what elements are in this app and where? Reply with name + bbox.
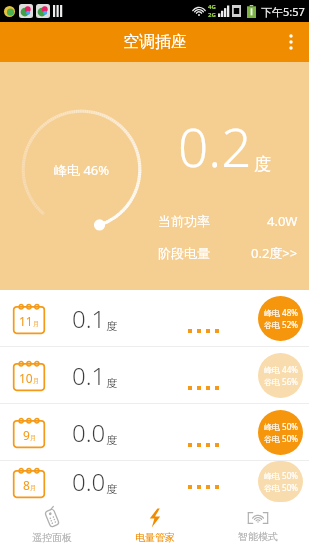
staticText: 0.0 <box>72 416 106 449</box>
button[interactable]: Peak electricity gauge 46 percent <box>20 108 143 231</box>
staticText: 11 <box>19 313 33 329</box>
staticText: 峰电 48% <box>264 307 298 318</box>
staticText: 0.0 <box>72 465 106 498</box>
staticText: 0.1 <box>72 359 106 392</box>
staticText: 月 <box>33 377 39 385</box>
staticText: 峰电 44% <box>264 364 298 375</box>
staticText: 遥控面板 <box>32 531 72 544</box>
staticText: 4G <box>208 3 216 11</box>
staticText: 下午5:57 <box>261 4 305 19</box>
staticText: 谷电 52% <box>264 319 298 330</box>
staticText: 9 <box>23 427 30 443</box>
staticText: 谷电 56% <box>264 376 298 387</box>
staticText: 度 <box>106 376 117 390</box>
staticText: 阶段电量 <box>158 245 210 261</box>
button[interactable]: 智能模式 <box>206 502 309 550</box>
button[interactable]: More options <box>273 22 309 62</box>
staticText: 4.0W <box>267 212 298 230</box>
staticText: 度 <box>254 154 271 175</box>
button[interactable]: 遥控面板 <box>0 502 103 550</box>
staticText: 峰电 50% <box>264 421 298 432</box>
staticText: 8 <box>23 477 30 493</box>
staticText: 月 <box>30 484 36 492</box>
staticText: 2G <box>208 11 216 19</box>
staticText: 0.2度>> <box>251 244 298 262</box>
button[interactable]: 10 <box>0 347 309 403</box>
staticText: 0.1 <box>72 302 106 335</box>
staticText: 度 <box>106 319 117 333</box>
button[interactable]: 电量管家 <box>103 502 206 550</box>
button[interactable]: 阶段电量 <box>158 244 298 262</box>
staticText: 空调插座 <box>123 32 187 52</box>
staticText: 峰电 46% <box>54 161 110 179</box>
staticText: 峰电 50% <box>264 470 298 481</box>
staticText: 度 <box>106 482 117 496</box>
button[interactable]: 9 <box>0 404 309 460</box>
staticText: 电量管家 <box>135 531 175 544</box>
staticText: 度 <box>106 433 117 447</box>
staticText: 10 <box>19 370 33 386</box>
staticText: 谷电 50% <box>264 433 298 444</box>
staticText: 当前功率 <box>158 213 210 229</box>
button[interactable]: 11 <box>0 290 309 346</box>
button[interactable]: 8 <box>0 461 309 502</box>
staticText: 月 <box>30 434 36 442</box>
staticText: 0.2 <box>178 110 252 182</box>
button[interactable]: 当前功率 <box>158 212 298 230</box>
staticText: 智能模式 <box>238 530 278 543</box>
staticText: 谷电 50% <box>264 482 298 493</box>
staticText: 月 <box>33 320 39 328</box>
